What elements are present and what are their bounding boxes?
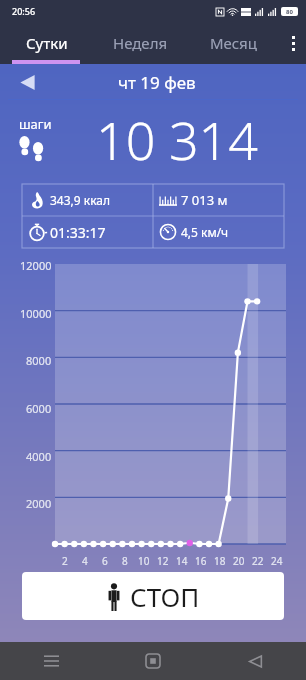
button[interactable]: 01:33:17 <box>22 216 153 248</box>
button[interactable]: 4,5 км/ч <box>153 216 284 248</box>
staticText: 4 <box>82 554 88 568</box>
staticText: Сутки <box>26 33 68 53</box>
staticText: 10 314 <box>58 104 296 175</box>
staticText: 16 <box>195 554 207 568</box>
staticText: чт 19 фев <box>118 71 196 94</box>
staticText: 6 <box>102 554 108 568</box>
staticText: 4000 <box>26 449 52 464</box>
staticText: 22 <box>252 554 264 568</box>
staticText: 20:56 <box>12 5 36 17</box>
staticText: 2 <box>62 554 68 568</box>
staticText: 20 <box>233 554 245 568</box>
staticText: 10 <box>138 554 150 568</box>
button[interactable]: Сутки <box>0 22 94 64</box>
staticText: 6000 <box>26 401 52 416</box>
button[interactable]: Back <box>204 642 306 680</box>
staticText: 343,9 ккал <box>50 192 111 208</box>
staticText: 24 <box>271 554 283 568</box>
staticText: 7 013 м <box>181 191 228 209</box>
button[interactable]: СТОП <box>22 572 284 620</box>
staticText: 8 <box>122 554 128 568</box>
staticText: Месяц <box>210 33 257 53</box>
button[interactable]: More options <box>280 22 306 64</box>
button[interactable]: Месяц <box>187 22 280 64</box>
staticText: 2000 <box>26 496 52 511</box>
staticText: 8000 <box>26 353 52 368</box>
staticText: шаги <box>19 115 52 133</box>
staticText: 01:33:17 <box>50 223 106 242</box>
staticText: 4,5 км/ч <box>181 224 229 240</box>
button[interactable]: Home <box>102 642 204 680</box>
staticText: 14 <box>176 554 188 568</box>
button[interactable]: 343,9 ккал <box>22 184 153 216</box>
button[interactable]: Неделя <box>94 22 187 64</box>
staticText: 80 <box>286 8 293 16</box>
staticText: 10000 <box>20 306 52 321</box>
staticText: Неделя <box>113 33 168 53</box>
staticText: СТОП <box>130 579 200 614</box>
staticText: 12000 <box>20 258 52 273</box>
button[interactable]: Previous day <box>10 65 44 99</box>
button[interactable]: Recent apps <box>0 642 102 680</box>
button[interactable]: 7 013 м <box>153 184 284 216</box>
staticText: 12 <box>157 554 169 568</box>
staticText: 18 <box>214 554 226 568</box>
